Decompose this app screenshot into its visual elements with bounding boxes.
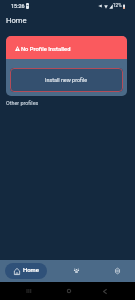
staticText: 12% xyxy=(113,3,122,8)
button[interactable]: Profiles xyxy=(70,264,83,277)
staticText: Other profiles xyxy=(6,100,39,106)
button[interactable]: Home xyxy=(63,285,75,297)
staticText: No Profile Installed xyxy=(21,46,71,53)
staticText: Install new profile xyxy=(45,77,88,83)
staticText: 15:26 xyxy=(11,3,25,9)
button[interactable]: No Profile Installed xyxy=(6,36,127,96)
staticText: Home xyxy=(6,16,27,25)
button[interactable]: Settings xyxy=(111,264,124,277)
button[interactable]: Recents xyxy=(22,285,34,297)
button[interactable]: Install new profile xyxy=(10,68,123,92)
button[interactable]: Back xyxy=(99,285,111,297)
staticText: Home xyxy=(23,267,39,274)
button[interactable]: Home xyxy=(5,263,47,279)
